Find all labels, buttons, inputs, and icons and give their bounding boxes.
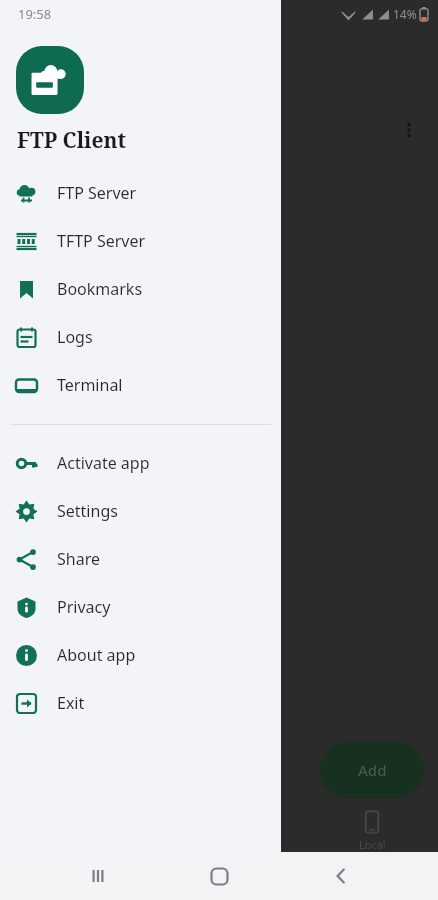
staticText: 14% bbox=[393, 6, 417, 22]
button[interactable]: Settings bbox=[0, 487, 281, 535]
button[interactable]: About app bbox=[0, 631, 281, 679]
staticText: Add bbox=[358, 760, 387, 780]
button[interactable]: Logs bbox=[0, 313, 281, 361]
staticText: Terminal bbox=[57, 374, 123, 396]
button[interactable]: Terminal bbox=[0, 361, 281, 409]
staticText: FTP Client bbox=[17, 126, 126, 155]
button[interactable]: Recent apps bbox=[74, 852, 122, 900]
button[interactable]: Activate app bbox=[0, 439, 281, 487]
staticText: Share bbox=[57, 548, 100, 570]
staticText: Settings bbox=[57, 500, 118, 522]
button[interactable]: FTP Server bbox=[0, 169, 281, 217]
button[interactable]: Exit bbox=[0, 679, 281, 727]
button[interactable]: Home bbox=[195, 852, 243, 900]
button[interactable]: Privacy bbox=[0, 583, 281, 631]
staticText: FTP Server bbox=[57, 182, 137, 204]
button[interactable]: Back bbox=[317, 852, 365, 900]
button[interactable]: Share bbox=[0, 535, 281, 583]
button[interactable]: Add bbox=[320, 742, 424, 798]
staticText: TFTP Server bbox=[57, 230, 146, 252]
staticText: Logs bbox=[57, 326, 93, 348]
staticText: Local bbox=[359, 837, 386, 852]
staticText: 19:58 bbox=[18, 5, 52, 23]
staticText: Activate app bbox=[57, 452, 150, 474]
staticText: Privacy bbox=[57, 596, 111, 618]
button[interactable]: Bookmarks bbox=[0, 265, 281, 313]
staticText: Exit bbox=[57, 692, 85, 714]
button[interactable]: Local bbox=[336, 810, 408, 852]
button[interactable]: TFTP Server bbox=[0, 217, 281, 265]
staticText: Bookmarks bbox=[57, 278, 143, 300]
staticText: About app bbox=[57, 644, 136, 666]
